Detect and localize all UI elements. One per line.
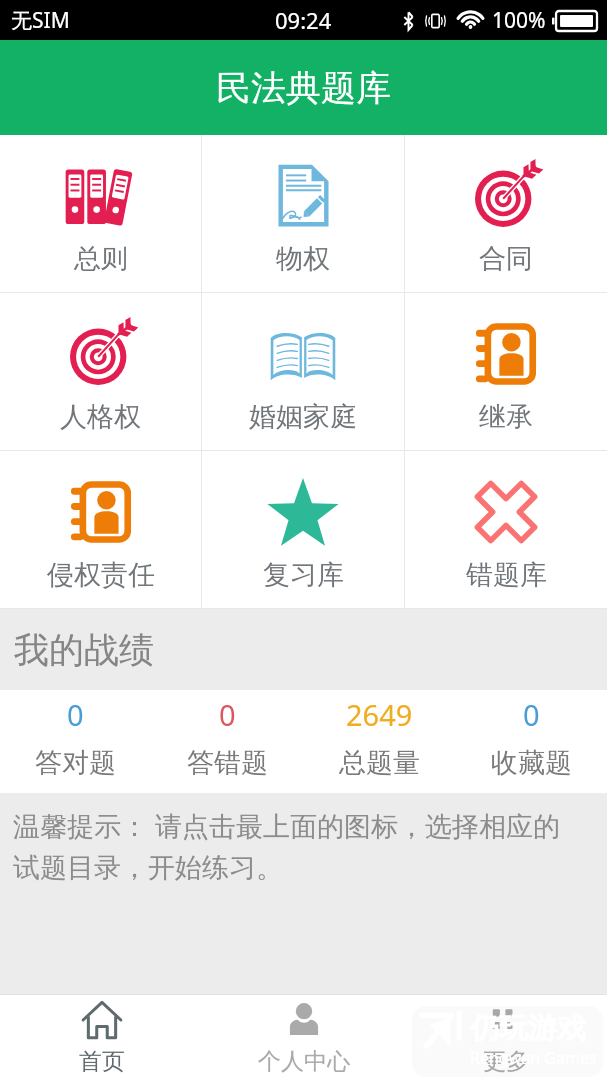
staticText: 民法典题库 [216,66,391,110]
staticText: 总题量 [339,746,420,780]
button[interactable]: 婚姻家庭 [202,293,404,450]
staticText: 0 [219,695,236,734]
staticText: 答对题 [35,746,116,780]
staticText: 100% [492,6,546,35]
staticText: 0 [523,695,540,734]
staticText: 继承 [479,400,533,434]
staticText: 人格权 [60,400,141,434]
button[interactable]: 总则 [0,135,201,292]
staticText: 仍玩游戏 [470,1010,586,1047]
button[interactable]: 继承 [405,293,607,450]
button[interactable]: 2649 [303,690,455,793]
staticText: 我的战绩 [14,628,154,672]
button[interactable]: 错题库 [405,451,607,608]
staticText: 收藏题 [491,746,572,780]
button[interactable]: 合同 [405,135,607,292]
staticText: 复习库 [263,558,344,592]
button[interactable]: 0 [0,690,151,793]
staticText: 更多 [483,1047,529,1076]
staticText: 合同 [479,242,533,276]
button[interactable]: 人格权 [0,293,201,450]
staticText: 09:24 [275,5,332,35]
button[interactable]: Profile [203,994,405,1080]
staticText: 答错题 [187,746,268,780]
staticText: 无SIM [11,6,70,35]
staticText: 0 [67,695,84,734]
button[interactable]: 侵权责任 [0,451,201,608]
staticText: 错题库 [466,558,547,592]
button[interactable]: Home [0,994,203,1080]
staticText: 首页 [79,1047,125,1076]
staticText: 温馨提示： 请点击最上面的图标，选择相应的试题目录，开始练习。 [13,807,577,885]
staticText: 物权 [276,242,330,276]
staticText: 个人中心 [258,1047,350,1076]
staticText: 婚姻家庭 [249,400,357,434]
button[interactable]: 物权 [202,135,404,292]
button[interactable]: 0 [455,690,607,793]
staticText: Rengwan Games [470,1047,597,1069]
staticText: 侵权责任 [47,558,155,592]
button[interactable]: 复习库 [202,451,404,608]
button[interactable]: More [405,994,607,1080]
staticText: 2649 [346,695,413,734]
staticText: 总则 [74,242,128,276]
button[interactable]: 0 [151,690,303,793]
